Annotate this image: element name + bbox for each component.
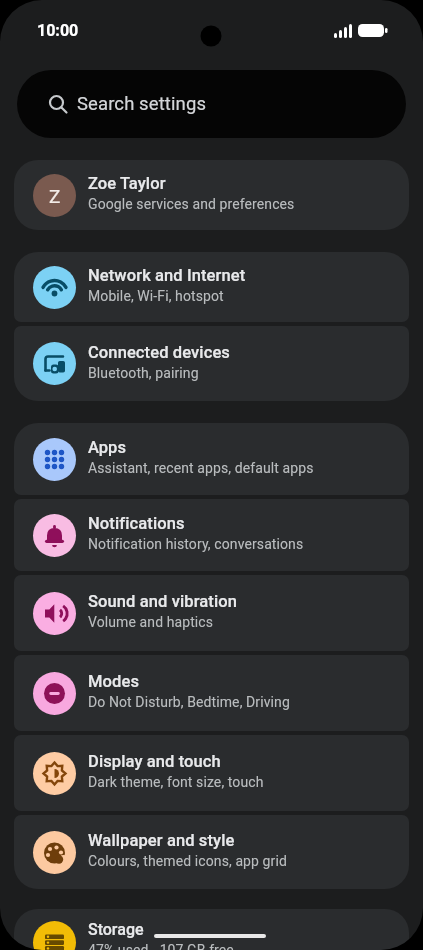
button[interactable]: Apps <box>14 423 409 495</box>
staticText: Assistant, recent apps, default apps <box>88 460 314 476</box>
staticText: Z <box>49 185 61 207</box>
button[interactable]: Connected devices <box>14 326 409 401</box>
staticText: 47% used - 107 GB free <box>88 942 234 950</box>
staticText: Mobile, Wi-Fi, hotspot <box>88 288 224 304</box>
button[interactable]: Notifications <box>14 499 409 571</box>
button[interactable]: Modes <box>14 655 409 731</box>
staticText: Dark theme, font size, touch <box>88 774 264 790</box>
button[interactable]: Z <box>14 160 409 230</box>
staticText: Colours, themed icons, app grid <box>88 853 287 869</box>
button[interactable]: Display and touch <box>14 735 409 811</box>
button[interactable]: Sound and vibration <box>14 575 409 651</box>
staticText: Notification history, conversations <box>88 536 304 552</box>
button[interactable]: Storage <box>14 909 409 950</box>
staticText: Apps <box>88 438 127 457</box>
button[interactable]: Network and Internet <box>14 252 409 322</box>
staticText: Bluetooth, pairing <box>88 365 199 381</box>
staticText: Connected devices <box>88 343 230 362</box>
staticText: Storage <box>88 920 144 939</box>
staticText: Network and Internet <box>88 266 246 285</box>
staticText: Sound and vibration <box>88 592 238 611</box>
staticText: Zoe Taylor <box>88 174 166 193</box>
staticText: Modes <box>88 672 140 691</box>
staticText: Wallpaper and style <box>88 831 235 850</box>
button[interactable]: Search settings <box>17 70 406 138</box>
staticText: 10:00 <box>37 21 79 40</box>
staticText: Google services and preferences <box>88 196 295 212</box>
staticText: Display and touch <box>88 752 221 771</box>
staticText: Volume and haptics <box>88 614 214 630</box>
staticText: Search settings <box>77 93 207 115</box>
staticText: Notifications <box>88 514 185 533</box>
staticText: Do Not Disturb, Bedtime, Driving <box>88 694 290 710</box>
button[interactable]: Wallpaper and style <box>14 815 409 889</box>
